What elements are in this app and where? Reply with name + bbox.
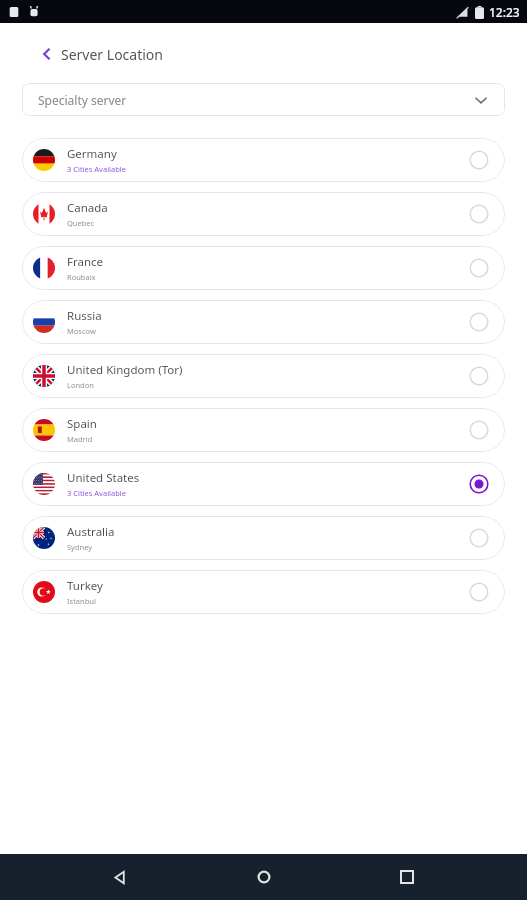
button[interactable]: Home [241, 854, 287, 900]
staticText: Turkey [67, 578, 103, 594]
button[interactable]: Russia [22, 300, 505, 344]
staticText: Istanbul [67, 596, 96, 606]
staticText: Quebec [67, 218, 95, 228]
staticText: France [67, 254, 104, 270]
button[interactable]: Specialty server [22, 83, 505, 116]
button[interactable]: United States [22, 462, 505, 506]
staticText: Roubaix [67, 272, 96, 282]
button[interactable]: France [22, 246, 505, 290]
button[interactable]: Australia [22, 516, 505, 560]
button[interactable]: Spain [22, 408, 505, 452]
button[interactable]: Recent apps [384, 854, 430, 900]
staticText: Sydney [67, 542, 93, 552]
other: Back [40, 47, 54, 61]
staticText: Madrid [67, 434, 93, 444]
button[interactable]: Canada [22, 192, 505, 236]
staticText: Germany [67, 146, 117, 162]
button[interactable]: United Kingdom (Tor) [22, 354, 505, 398]
staticText: United Kingdom (Tor) [67, 362, 183, 378]
staticText: 3 Cities Available [67, 488, 126, 498]
staticText: United States [67, 470, 140, 486]
staticText: Russia [67, 308, 102, 324]
staticText: Spain [67, 416, 97, 432]
staticText: Server Location [61, 45, 163, 64]
staticText: 3 Cities Available [67, 164, 126, 174]
button[interactable]: Germany [22, 138, 505, 182]
staticText: Canada [67, 200, 108, 216]
staticText: Specialty server [38, 92, 473, 108]
staticText: Australia [67, 524, 115, 540]
staticText: 12:23 [489, 4, 520, 20]
button[interactable]: Back [0, 39, 527, 69]
button[interactable]: Turkey [22, 570, 505, 614]
button[interactable]: Back [97, 854, 143, 900]
staticText: London [67, 380, 94, 390]
staticText: Moscow [67, 326, 96, 336]
